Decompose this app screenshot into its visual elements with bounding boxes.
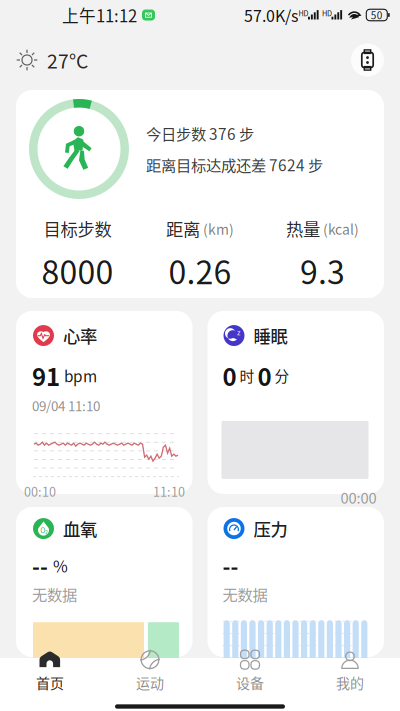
staticText: 无数据 (32, 583, 77, 605)
staticText: 距离 (166, 216, 200, 241)
button[interactable]: 心率 (16, 311, 192, 494)
staticText: O₂ (40, 525, 47, 535)
staticText: 心率 (63, 323, 97, 348)
staticText: 0 (257, 358, 271, 393)
staticText: -- (222, 550, 238, 581)
staticText: 首页 (36, 672, 64, 692)
staticText: 00:00 (340, 487, 376, 508)
staticText: 8000 (41, 247, 113, 293)
button[interactable]: 首页 (0, 652, 100, 696)
staticText: 无数据 (222, 583, 267, 605)
staticText: 热量 (286, 216, 320, 241)
button[interactable]: 今日步数 376 步 (16, 90, 384, 298)
staticText: 9.3 (300, 247, 345, 293)
staticText: 压力 (253, 516, 287, 541)
staticText: HD (298, 8, 308, 18)
staticText: 上午11:12 (62, 3, 137, 27)
staticText: -- (32, 550, 48, 581)
button[interactable]: 运动 (100, 652, 200, 696)
staticText: 我的 (336, 672, 364, 692)
staticText: 血氧 (63, 516, 97, 541)
staticText: 0.26 (168, 247, 231, 293)
staticText: 00:10 (24, 482, 56, 500)
button[interactable]: 我的 (300, 652, 400, 696)
button[interactable]: 设备 (200, 652, 300, 696)
button[interactable]: 压力 (207, 507, 384, 657)
button[interactable]: z (207, 311, 384, 494)
staticText: 11:10 (153, 482, 185, 500)
staticText: (kcal) (320, 218, 359, 239)
staticText: bpm (64, 364, 97, 387)
staticText: 今日步数 376 步 (146, 122, 254, 144)
staticText: 运动 (136, 672, 164, 692)
staticText: 设备 (236, 672, 264, 692)
staticText: HD (322, 8, 332, 18)
staticText: 09/04 11:10 (32, 396, 100, 415)
button[interactable]: 我的设备 (351, 43, 384, 76)
button[interactable]: O₂ (16, 507, 192, 657)
staticText: 50 (371, 8, 383, 22)
staticText: 目标步数 (43, 216, 111, 241)
staticText: 时 (236, 365, 257, 386)
staticText: 27°C (47, 46, 88, 74)
staticText: 睡眠 (253, 323, 287, 348)
staticText: (km) (200, 218, 234, 239)
staticText: 分 (271, 365, 289, 386)
staticText: 0 (222, 358, 236, 393)
staticText: 57.0K/s (244, 3, 298, 27)
staticText: 91 (32, 358, 60, 393)
staticText: % (53, 554, 68, 577)
staticText: 距离目标达成还差 7624 步 (146, 153, 323, 176)
staticText: z (237, 327, 240, 337)
